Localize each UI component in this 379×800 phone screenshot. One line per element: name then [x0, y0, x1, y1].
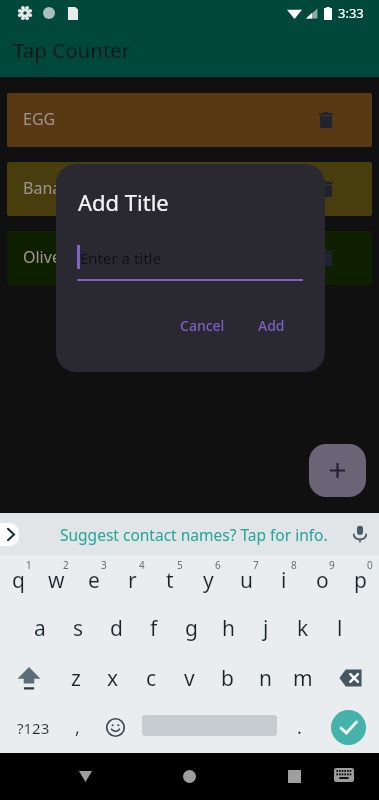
staticText: c: [146, 664, 157, 693]
staticText: k: [297, 614, 309, 643]
button[interactable]: Emoji: [96, 702, 134, 753]
button[interactable]: o: [303, 555, 341, 604]
staticText: Enter a title: [80, 248, 161, 268]
staticText: EGG: [23, 108, 56, 130]
button[interactable]: Backspace: [322, 653, 379, 703]
staticText: u: [240, 566, 253, 595]
staticText: i: [281, 566, 287, 595]
staticText: r: [128, 566, 137, 595]
button[interactable]: Expand suggestions: [0, 523, 19, 546]
staticText: v: [184, 664, 195, 693]
staticText: j: [263, 614, 269, 643]
button[interactable]: f: [135, 604, 173, 653]
staticText: y: [203, 566, 214, 595]
button[interactable]: Shift: [0, 653, 57, 703]
staticText: 0: [367, 558, 373, 572]
button[interactable]: ,: [58, 702, 96, 753]
staticText: z: [71, 664, 81, 693]
staticText: 4: [139, 558, 145, 572]
button[interactable]: z: [57, 653, 94, 703]
staticText: .: [297, 715, 302, 740]
button[interactable]: j: [247, 604, 284, 653]
staticText: Olive: [23, 246, 61, 268]
staticText: x: [107, 664, 119, 693]
staticText: Cancel: [180, 316, 225, 335]
staticText: s: [73, 614, 84, 643]
button[interactable]: m: [284, 653, 322, 703]
button[interactable]: a: [21, 604, 59, 653]
button[interactable]: Olive: [7, 231, 372, 285]
button[interactable]: u: [227, 555, 265, 604]
staticText: e: [88, 566, 100, 595]
staticText: m: [293, 664, 313, 693]
button[interactable]: x: [94, 653, 132, 703]
staticText: 3: [101, 558, 107, 572]
staticText: b: [221, 664, 234, 693]
staticText: 2: [63, 558, 69, 572]
button[interactable]: n: [246, 653, 284, 703]
button[interactable]: q: [0, 555, 37, 604]
staticText: p: [354, 566, 367, 595]
button[interactable]: c: [132, 653, 170, 703]
button[interactable]: EGG: [7, 93, 372, 147]
staticText: l: [337, 614, 343, 643]
button[interactable]: Banana: [7, 162, 372, 216]
staticText: Add: [258, 316, 285, 335]
button[interactable]: s: [59, 604, 97, 653]
staticText: h: [222, 614, 235, 643]
button[interactable]: h: [210, 604, 247, 653]
staticText: g: [185, 614, 198, 643]
staticText: w: [48, 566, 65, 595]
staticText: 6: [215, 558, 221, 572]
button[interactable]: r: [113, 555, 151, 604]
staticText: f: [150, 614, 158, 643]
button[interactable]: y: [189, 555, 227, 604]
staticText: ?123: [17, 718, 50, 738]
button[interactable]: Add: [309, 444, 366, 497]
staticText: 3:33: [338, 4, 364, 22]
button[interactable]: Switch keyboard: [322, 753, 366, 797]
button[interactable]: b: [208, 653, 246, 703]
button[interactable]: Recent apps: [270, 753, 318, 800]
staticText: ,: [75, 715, 80, 740]
staticText: 7: [253, 558, 259, 572]
button[interactable]: g: [173, 604, 210, 653]
staticText: Add Title: [78, 187, 169, 217]
staticText: d: [110, 614, 123, 643]
button[interactable]: .: [283, 702, 315, 753]
button[interactable]: t: [151, 555, 189, 604]
staticText: 9: [329, 558, 335, 572]
staticText: 1: [26, 558, 32, 572]
staticText: Banana: [23, 177, 81, 199]
button[interactable]: v: [170, 653, 208, 703]
staticText: 8: [291, 558, 297, 572]
staticText: q: [12, 566, 25, 595]
button[interactable]: w: [37, 555, 75, 604]
staticText: t: [166, 566, 174, 595]
button[interactable]: l: [321, 604, 358, 653]
button[interactable]: Home: [165, 753, 213, 800]
button[interactable]: e: [75, 555, 113, 604]
button[interactable]: k: [284, 604, 321, 653]
button[interactable]: Cancel: [168, 308, 237, 343]
button[interactable]: Delete: [311, 174, 341, 204]
button[interactable]: p: [341, 555, 379, 604]
button[interactable]: Back: [61, 753, 109, 800]
staticText: a: [34, 614, 46, 643]
button[interactable]: Add: [246, 308, 297, 343]
staticText: Tap Counter: [13, 36, 131, 64]
button[interactable]: Enter: [331, 710, 366, 745]
staticText: 5: [177, 558, 183, 572]
button[interactable]: Voice input: [347, 521, 373, 547]
button[interactable]: i: [265, 555, 303, 604]
button[interactable]: ?123: [8, 702, 58, 753]
staticText: n: [259, 664, 272, 693]
staticText: o: [316, 566, 329, 595]
staticText: Suggest contact names? Tap for info.: [60, 524, 328, 545]
button[interactable]: d: [97, 604, 135, 653]
button[interactable]: Delete: [311, 105, 341, 135]
button[interactable]: Delete: [311, 243, 341, 273]
